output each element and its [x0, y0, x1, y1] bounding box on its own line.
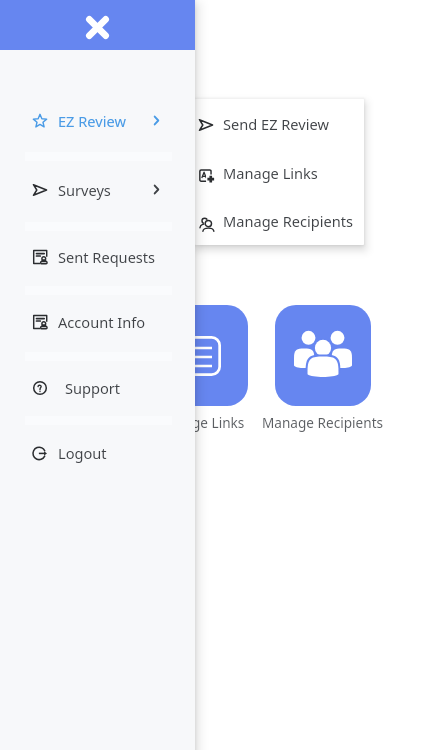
- button[interactable]: Send EZ Review: [195, 99, 364, 148]
- button[interactable]: EZ Review: [0, 86, 195, 155]
- staticText: EZ Review: [58, 111, 126, 131]
- button[interactable]: Support: [0, 355, 195, 420]
- button[interactable]: Manage Links: [195, 148, 364, 197]
- staticText: Manage Recipients: [262, 413, 384, 432]
- staticText: Manage Links: [156, 413, 245, 432]
- staticText: Support: [65, 378, 121, 398]
- staticText: Send EZ Review: [223, 114, 329, 134]
- button[interactable]: Sent Requests: [0, 224, 195, 289]
- button[interactable]: Manage Links: [152, 305, 248, 406]
- staticText: Sent Requests: [58, 247, 156, 267]
- staticText: Account Info: [58, 312, 146, 332]
- button[interactable]: Logout: [0, 420, 195, 485]
- staticText: Manage Links: [223, 163, 318, 183]
- staticText: Manage Recipients: [223, 211, 353, 231]
- button[interactable]: Manage Recipients: [195, 197, 364, 245]
- button[interactable]: Surveys: [0, 155, 195, 224]
- button[interactable]: Account Info: [0, 289, 195, 355]
- staticText: Logout: [58, 443, 107, 463]
- button[interactable]: Close menu: [0, 0, 195, 50]
- staticText: Surveys: [58, 180, 111, 200]
- button[interactable]: Manage Recipients: [275, 305, 371, 406]
